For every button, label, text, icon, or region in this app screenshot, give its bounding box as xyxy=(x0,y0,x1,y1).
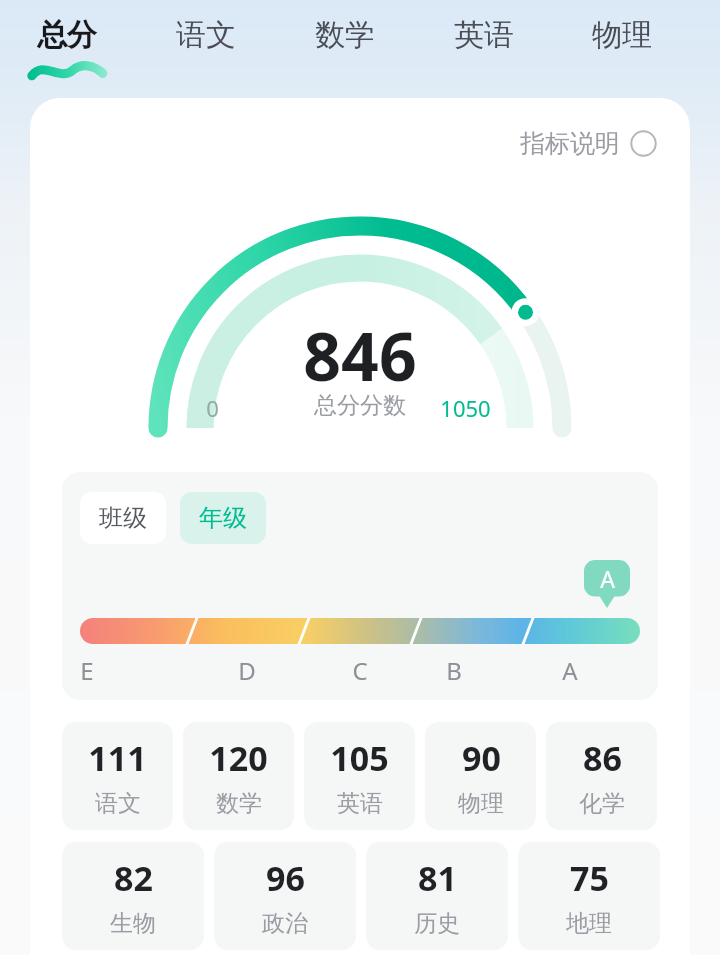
button[interactable]: 90 xyxy=(425,722,536,830)
staticText: 指标说明 xyxy=(520,128,620,159)
staticText: 96 xyxy=(266,855,305,901)
button[interactable]: 年级 xyxy=(180,492,266,544)
button[interactable]: 120 xyxy=(183,722,294,830)
staticText: 105 xyxy=(330,735,389,781)
button[interactable]: 数学 xyxy=(293,2,397,90)
staticText: 75 xyxy=(570,855,609,901)
staticText: 数学 xyxy=(315,16,375,54)
staticText: B xyxy=(446,654,462,687)
button[interactable]: 75 xyxy=(518,842,660,950)
staticText: 地理 xyxy=(566,909,612,938)
staticText: C xyxy=(352,654,368,687)
other: 指标说明帮助 xyxy=(630,130,657,157)
button[interactable]: 105 xyxy=(304,722,415,830)
button[interactable]: 英语 xyxy=(432,2,536,90)
staticText: 数学 xyxy=(216,789,262,818)
staticText: 90 xyxy=(462,735,501,781)
staticText: 82 xyxy=(114,855,153,901)
staticText: 语文 xyxy=(176,16,236,54)
staticText: 生物 xyxy=(110,909,156,938)
staticText: 总分分数 xyxy=(314,391,406,420)
staticText: 846 xyxy=(303,310,417,400)
button[interactable]: 111 xyxy=(62,722,173,830)
button[interactable]: 语文 xyxy=(154,2,258,90)
staticText: 物理 xyxy=(458,789,504,818)
button[interactable]: 指标说明 xyxy=(520,128,657,159)
staticText: A xyxy=(600,563,615,594)
button[interactable]: 班级 xyxy=(80,492,166,544)
staticText: 物理 xyxy=(592,16,652,54)
staticText: E xyxy=(80,654,94,687)
button[interactable]: 86 xyxy=(546,722,657,830)
staticText: 86 xyxy=(583,735,622,781)
staticText: D xyxy=(238,654,256,687)
staticText: 0 xyxy=(206,393,219,423)
staticText: 班级 xyxy=(99,503,147,533)
staticText: 年级 xyxy=(199,503,247,533)
staticText: 语文 xyxy=(95,789,141,818)
staticText: 政治 xyxy=(262,909,308,938)
staticText: 化学 xyxy=(579,789,625,818)
button[interactable]: 82 xyxy=(62,842,204,950)
staticText: 81 xyxy=(418,855,457,901)
staticText: 1050 xyxy=(440,393,491,423)
staticText: 120 xyxy=(209,735,268,781)
staticText: 111 xyxy=(88,735,147,781)
button[interactable]: 81 xyxy=(366,842,508,950)
staticText: A xyxy=(562,654,578,687)
staticText: 总分 xyxy=(37,16,97,54)
button[interactable]: 96 xyxy=(214,842,356,950)
staticText: 历史 xyxy=(414,909,460,938)
button[interactable]: 总分 xyxy=(15,2,119,90)
button[interactable]: 物理 xyxy=(570,2,674,90)
staticText: 英语 xyxy=(337,789,383,818)
staticText: 英语 xyxy=(454,16,514,54)
